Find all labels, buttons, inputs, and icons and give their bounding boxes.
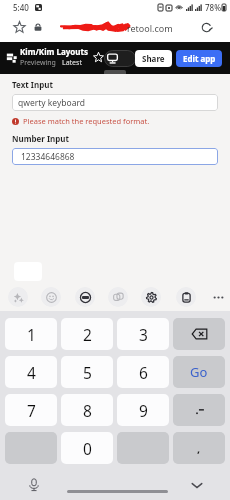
button[interactable]: 8 [61, 394, 113, 426]
staticText: 9 [139, 400, 148, 421]
button[interactable]: Stickers [108, 287, 128, 307]
staticText: 3 [139, 324, 148, 345]
button[interactable]: 0 [61, 432, 113, 464]
staticText: 5 [83, 362, 92, 383]
staticText: Kim/Kim Layouts [20, 46, 88, 57]
button[interactable]: Share [135, 50, 172, 67]
button[interactable]: 3 [117, 318, 169, 350]
button[interactable]: 5 [61, 356, 113, 388]
staticText: 5:40 [13, 2, 29, 13]
button[interactable]: Backspace [173, 318, 225, 350]
staticText: 4 [27, 362, 36, 383]
button[interactable]: More options [208, 287, 228, 307]
staticText: 0 [83, 438, 92, 459]
button[interactable]: Favorite [93, 52, 104, 63]
button[interactable]: Reload [200, 21, 213, 34]
staticText: Latest [62, 58, 82, 68]
button[interactable]: Emoji [41, 287, 61, 307]
staticText: qwerty keyboard [18, 97, 86, 109]
staticText: 7 [27, 400, 36, 421]
button[interactable]: Keyboard settings [141, 287, 161, 307]
button[interactable]: 6 [117, 356, 169, 388]
button[interactable]: Edit app [176, 50, 222, 67]
button[interactable]: Clipboard [176, 287, 196, 307]
button[interactable]: 12334646868 [12, 148, 218, 165]
staticText: 12334646868 [21, 151, 75, 163]
button[interactable]: 1 [5, 318, 57, 350]
staticText: 2 [83, 324, 92, 345]
button[interactable]: Voice input [27, 478, 41, 492]
staticText: retool.com [127, 22, 173, 34]
staticText: 6 [139, 362, 148, 383]
staticText: Previewing [20, 58, 56, 68]
button[interactable]: Comma [173, 432, 225, 464]
button[interactable]: 4 [5, 356, 57, 388]
staticText: Edit app [183, 53, 216, 64]
staticText: Number Input [12, 133, 70, 144]
button[interactable]: Hide keyboard [190, 478, 204, 492]
button[interactable]: Period and hyphen [173, 394, 225, 426]
button[interactable]: Bookmark [13, 21, 26, 34]
button[interactable]: GIF [75, 287, 95, 307]
staticText: 1 [27, 324, 36, 345]
staticText: , [197, 441, 201, 456]
staticText: Go [190, 363, 208, 381]
staticText: Please match the requested format. [23, 116, 150, 126]
staticText: Text Input [12, 79, 53, 90]
button[interactable]: 2 [61, 318, 113, 350]
button[interactable]: 7 [5, 394, 57, 426]
button[interactable]: Go [173, 356, 225, 388]
button[interactable]: Desktop preview [104, 50, 136, 67]
button[interactable]: 9 [117, 394, 169, 426]
staticText: 78% [205, 2, 221, 13]
button[interactable]: Site information [33, 22, 43, 32]
button[interactable]: Effects [8, 287, 28, 307]
staticText: Share [142, 53, 165, 64]
staticText: 8 [83, 400, 92, 421]
button[interactable]: qwerty keyboard [12, 94, 218, 111]
